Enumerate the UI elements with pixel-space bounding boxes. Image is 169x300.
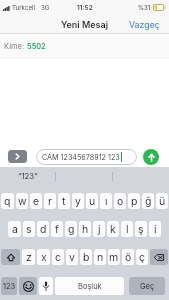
- button[interactable]: Boşluk: [55, 277, 124, 295]
- staticText: CAM 12345678912 123: [42, 153, 120, 162]
- button[interactable]: r: [44, 193, 56, 209]
- button[interactable]: ü: [156, 193, 168, 209]
- staticText: ğ: [145, 195, 152, 208]
- button[interactable]: 123: [1, 277, 17, 295]
- staticText: Yeni Mesaj: [61, 19, 109, 30]
- button[interactable]: z: [22, 249, 35, 265]
- staticText: t: [62, 195, 66, 208]
- button[interactable]: u: [86, 193, 98, 209]
- staticText: ç: [139, 251, 145, 264]
- button[interactable]: f: [51, 221, 63, 237]
- button[interactable]: ı: [100, 193, 112, 209]
- button[interactable]: m: [108, 249, 120, 265]
- staticText: Turkcell: [12, 4, 36, 12]
- staticText: s: [26, 223, 32, 236]
- staticText: f: [55, 223, 59, 236]
- staticText: o: [117, 195, 124, 208]
- staticText: ü: [159, 195, 166, 208]
- button[interactable]: l: [121, 221, 133, 237]
- staticText: w: [18, 195, 27, 208]
- staticText: Kime:: [4, 42, 27, 51]
- button[interactable]: Kime:: [0, 34, 169, 58]
- button[interactable]: ö: [122, 249, 134, 265]
- button[interactable]: e: [30, 193, 42, 209]
- staticText: i: [154, 223, 157, 236]
- button[interactable]: Send: [143, 149, 159, 165]
- button[interactable]: y: [72, 193, 84, 209]
- button[interactable]: ç: [136, 249, 148, 265]
- button[interactable]: Vazgeç: [124, 15, 169, 33]
- button[interactable]: “123”: [0, 167, 55, 186]
- staticText: Vazgeç: [129, 19, 160, 30]
- button[interactable]: ş: [135, 221, 147, 237]
- button[interactable]: w: [16, 193, 28, 209]
- button[interactable]: Backspace: [150, 249, 168, 265]
- staticText: x: [41, 251, 47, 264]
- button[interactable]: d: [37, 221, 49, 237]
- button[interactable]: q: [1, 193, 14, 209]
- staticText: y: [75, 195, 81, 208]
- staticText: n: [97, 251, 104, 264]
- staticText: p: [131, 195, 138, 208]
- button[interactable]: v: [66, 249, 78, 265]
- button[interactable]: o: [114, 193, 126, 209]
- staticText: z: [26, 251, 32, 264]
- button[interactable]: x: [37, 249, 50, 265]
- staticText: g: [68, 223, 75, 236]
- button[interactable]: s: [23, 221, 35, 237]
- staticText: j: [98, 223, 101, 236]
- staticText: Geç: [140, 282, 155, 291]
- staticText: 11:52: [77, 4, 93, 12]
- staticText: ş: [138, 223, 144, 236]
- button[interactable]: ğ: [142, 193, 154, 209]
- button[interactable]: Emoji: [19, 277, 37, 295]
- button[interactable]: Dictation: [39, 277, 53, 295]
- button[interactable]: t: [58, 193, 70, 209]
- staticText: e: [33, 195, 40, 208]
- staticText: k: [110, 223, 116, 236]
- button[interactable]: CAM 12345678912 123: [36, 149, 137, 165]
- staticText: ı: [105, 195, 108, 208]
- staticText: h: [82, 223, 89, 236]
- button[interactable]: b: [80, 249, 92, 265]
- button[interactable]: h: [79, 221, 91, 237]
- staticText: %31: [138, 4, 151, 11]
- button[interactable]: c: [52, 249, 64, 265]
- button[interactable]: Geç: [129, 277, 165, 295]
- button[interactable]: j: [93, 221, 105, 237]
- button[interactable]: p: [128, 193, 140, 209]
- button[interactable]: n: [94, 249, 106, 265]
- staticText: r: [48, 195, 52, 208]
- staticText: v: [69, 251, 75, 264]
- button[interactable]: g: [65, 221, 77, 237]
- staticText: 3G: [41, 4, 50, 12]
- staticText: b: [83, 251, 90, 264]
- staticText: u: [89, 195, 96, 208]
- staticText: m: [109, 251, 119, 264]
- staticText: Boşluk: [78, 282, 102, 291]
- staticText: d: [40, 223, 47, 236]
- button[interactable]: k: [107, 221, 119, 237]
- button[interactable]: More options: [8, 150, 27, 163]
- button[interactable]: i: [149, 221, 161, 237]
- staticText: q: [4, 195, 11, 208]
- button[interactable]: a: [8, 221, 21, 237]
- button[interactable]: Shift: [1, 249, 20, 265]
- staticText: 5502: [27, 42, 46, 51]
- staticText: c: [55, 251, 61, 264]
- staticText: “123”: [18, 171, 38, 180]
- staticText: ö: [125, 251, 132, 264]
- staticText: l: [126, 223, 129, 236]
- staticText: 123: [3, 282, 16, 291]
- staticText: a: [12, 223, 18, 236]
